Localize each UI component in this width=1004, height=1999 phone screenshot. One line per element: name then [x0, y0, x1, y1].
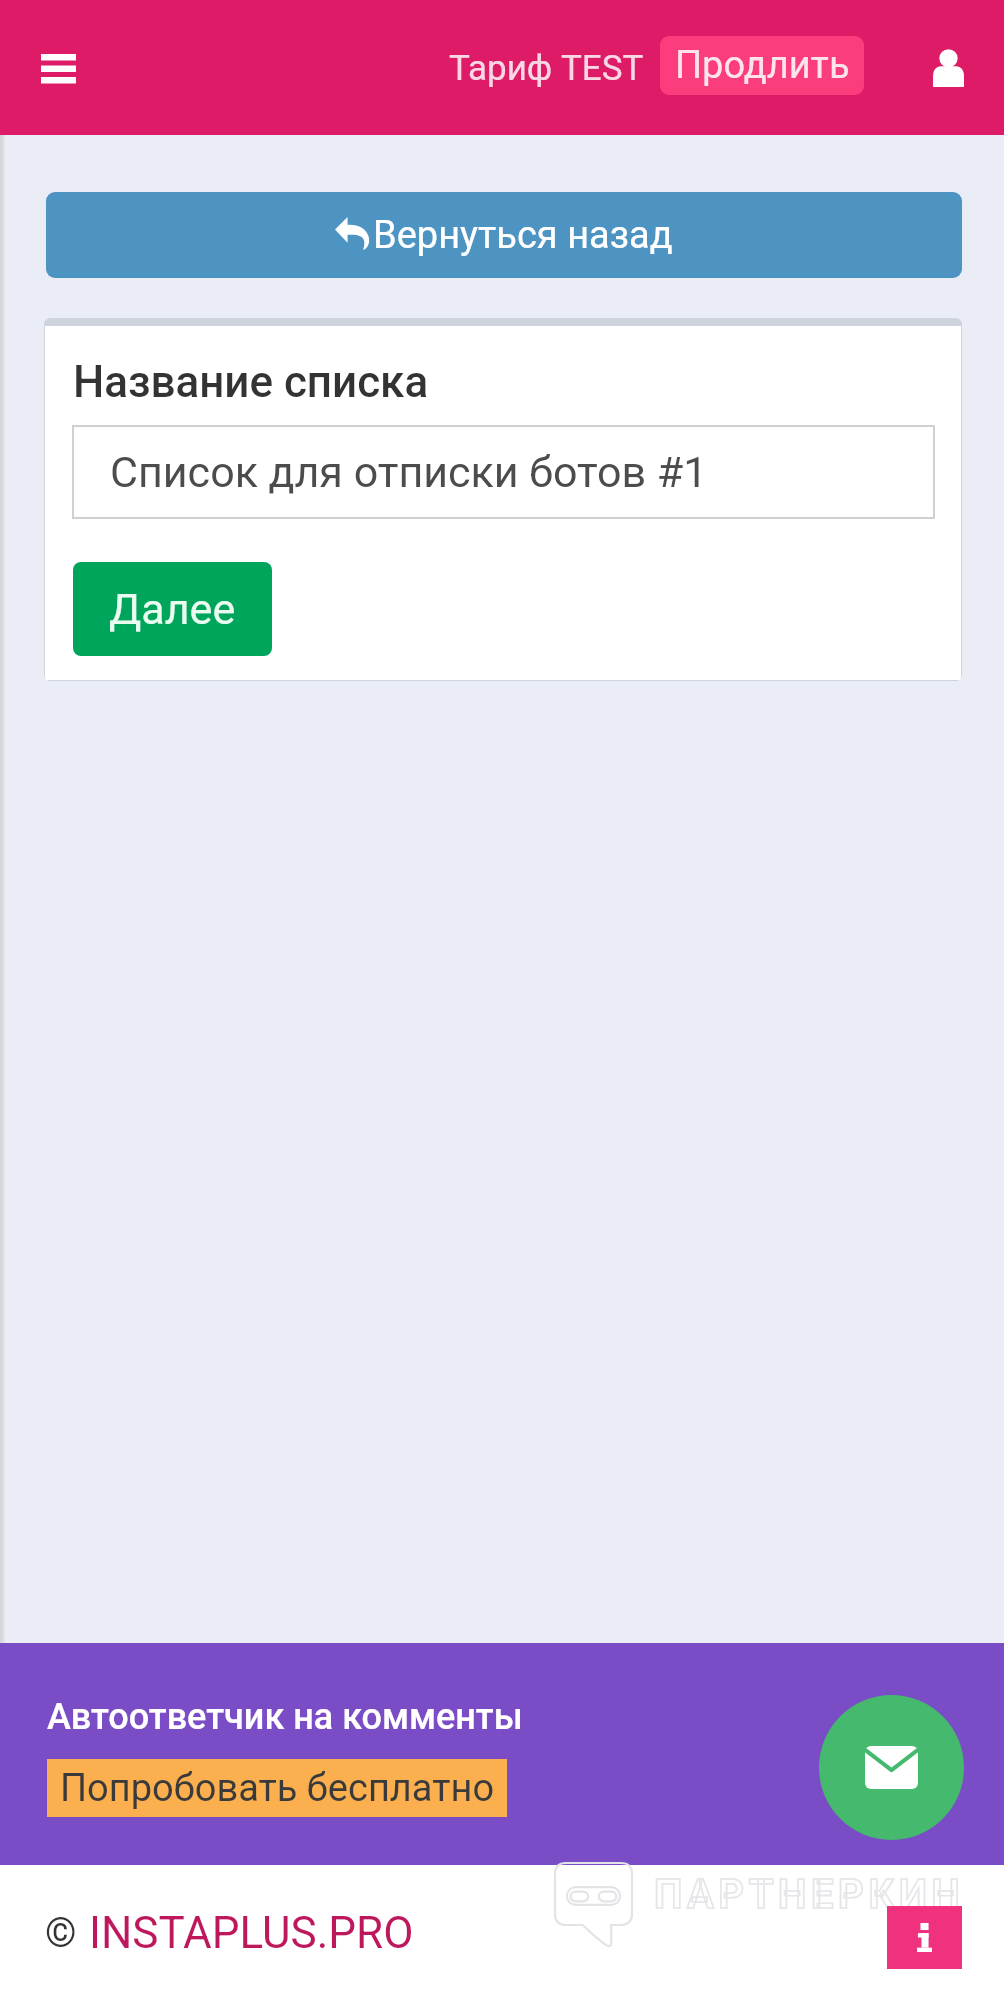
staticText: Название списка	[73, 356, 429, 408]
button[interactable]: Далее	[73, 562, 272, 656]
button[interactable]: Продлить	[660, 36, 864, 95]
button[interactable]: Menu	[26, 36, 90, 100]
button[interactable]: Список для отписки ботов #1	[73, 426, 934, 518]
button[interactable]: Попробовать бесплатно	[47, 1759, 507, 1817]
staticText: Тариф TEST	[449, 48, 644, 89]
button[interactable]: Profile	[916, 36, 980, 100]
staticText: Далее	[109, 584, 236, 634]
staticText: Продлить	[675, 43, 850, 88]
staticText: Автоответчик на комменты	[47, 1696, 523, 1738]
button[interactable]: Info	[887, 1906, 962, 1969]
staticText: ©	[45, 1910, 77, 1957]
button[interactable]: Messages	[819, 1695, 964, 1840]
staticText: Список для отписки ботов #1	[110, 447, 708, 497]
staticText: INSTAPLUS.PRO	[89, 1907, 414, 1959]
staticText: Вернуться назад	[373, 213, 673, 258]
button[interactable]: Вернуться назад	[46, 192, 962, 278]
staticText: Попробовать бесплатно	[60, 1766, 495, 1811]
staticText: ПАРТНЕРКИН	[654, 1871, 965, 1918]
